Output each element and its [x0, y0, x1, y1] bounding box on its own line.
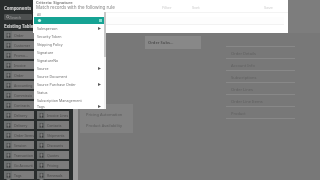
staticText: Delivery: [14, 123, 28, 128]
staticText: Status: [37, 90, 48, 95]
button[interactable]: Search components: [4, 14, 32, 20]
button[interactable]: Account Credit: [37, 51, 69, 59]
staticText: Account Info: [231, 63, 255, 68]
button[interactable]: Promo...: [4, 51, 34, 59]
staticText: Match records with the following rule: [36, 4, 115, 10]
staticText: Shipments: [47, 133, 65, 138]
button[interactable]: Salesperson: [34, 24, 106, 32]
button[interactable]: Account: [37, 31, 69, 39]
staticText: Commissions: [14, 93, 34, 98]
button[interactable]: Status: [34, 88, 106, 96]
button[interactable]: Order Pages: [4, 71, 34, 79]
staticText: Criteria: Signature: [36, 0, 73, 5]
button[interactable]: Subscriptions: [37, 71, 69, 79]
button[interactable]: Records: [37, 101, 69, 109]
staticText: Subscriptions: [47, 73, 69, 78]
button[interactable]: Discounts: [37, 141, 69, 149]
button[interactable]: Contracts: [4, 101, 34, 109]
staticText: Tasks: [47, 83, 56, 88]
staticText: Shipping Policy: [37, 42, 63, 47]
staticText: Search components: [10, 15, 32, 20]
staticText: Order Subs...: [148, 40, 174, 45]
staticText: Quotes: [47, 153, 59, 158]
staticText: Signature: [37, 50, 54, 55]
staticText: Pricing: [47, 163, 59, 168]
button[interactable]: Customer Ser...: [4, 41, 34, 49]
button[interactable]: Tasks: [37, 81, 69, 89]
button[interactable]: Product: [226, 107, 295, 119]
staticText: Save: [264, 5, 273, 9]
button[interactable]: Security Token: [34, 32, 106, 40]
staticText: Security Token: [37, 34, 62, 39]
staticText: Source Document: [37, 74, 68, 79]
button[interactable]: Session: [4, 141, 34, 149]
staticText: Account: [47, 33, 61, 38]
button[interactable]: Account Det...: [37, 41, 69, 49]
staticText: All: [37, 12, 42, 17]
button[interactable]: Quotes: [37, 151, 69, 159]
staticText: Invoice Lines: [47, 113, 69, 118]
staticText: Pricing Automation: [86, 112, 123, 117]
button[interactable]: [226, 35, 295, 47]
button[interactable]: Order Line Items: [226, 95, 295, 107]
button[interactable]: Go Account: [4, 161, 34, 169]
staticText: Salesperson: [37, 26, 58, 31]
button[interactable]: [34, 17, 284, 25]
button[interactable]: Tags: [34, 104, 106, 109]
button[interactable]: Shipping Policy: [34, 40, 106, 48]
button[interactable]: Filter: [161, 5, 173, 9]
button[interactable]: Signature: [34, 48, 106, 56]
button[interactable]: Source: [34, 64, 106, 72]
staticText: Tags: [37, 104, 45, 109]
staticText: Subscriptions: [231, 75, 257, 80]
button[interactable]: Payment Entries: [37, 61, 69, 69]
staticText: Sort: [192, 5, 200, 9]
staticText: Order Line Items: [231, 99, 263, 104]
button[interactable]: Subscriptions: [226, 71, 295, 83]
button[interactable]: Sort: [190, 5, 202, 9]
button[interactable]: Account Info: [226, 59, 295, 71]
staticText: Product: [231, 111, 246, 116]
button[interactable]: Order Details: [4, 31, 34, 39]
staticText: Discounts: [47, 143, 64, 148]
staticText: Source: [37, 66, 49, 71]
staticText: Promo...: [14, 53, 28, 58]
button[interactable]: Order Items: [4, 131, 34, 139]
button[interactable]: Accounting R...: [4, 81, 34, 89]
staticText: Account Credit: [47, 53, 69, 58]
staticText: Customer Ser...: [14, 43, 34, 48]
button[interactable]: Shipments: [37, 131, 69, 139]
button[interactable]: Order Subs...: [145, 36, 201, 49]
staticText: Order Items: [14, 133, 34, 138]
button[interactable]: Order Lines: [226, 83, 295, 95]
button[interactable]: Transaction L...: [4, 151, 34, 159]
button[interactable]: Renewals: [37, 171, 69, 179]
button[interactable]: Pricing Automation: [80, 104, 133, 133]
button[interactable]: Delivery Bun...: [4, 111, 34, 119]
button[interactable]: SignatureNo: [34, 56, 106, 64]
button[interactable]: SLA Tickets: [37, 91, 69, 99]
staticText: Source Purchase Order: [37, 82, 76, 87]
button[interactable]: Invoice Lines: [37, 111, 69, 119]
staticText: Order Pages: [14, 73, 34, 78]
button[interactable]: Subscription Management: [34, 96, 106, 104]
button[interactable]: Commissions: [4, 91, 34, 99]
staticText: Invoice: [14, 63, 26, 68]
button[interactable]: Source Purchase Order: [34, 80, 106, 88]
button[interactable]: Delivery: [4, 121, 34, 129]
button[interactable]: Source Document: [34, 72, 106, 80]
button[interactable]: Tags: [4, 171, 34, 179]
button[interactable]: Contacts: [37, 121, 69, 129]
button[interactable]: [34, 17, 106, 24]
button[interactable]: Order Details: [226, 47, 295, 59]
staticText: Order Lines: [231, 87, 253, 92]
button[interactable]: Invoice: [4, 61, 34, 69]
staticText: Filter: [162, 5, 172, 9]
button[interactable]: Pricing: [37, 161, 69, 169]
staticText: SignatureNo: [37, 58, 59, 63]
button[interactable]: More options: [261, 5, 275, 9]
staticText: Delivery Bun...: [14, 113, 34, 118]
